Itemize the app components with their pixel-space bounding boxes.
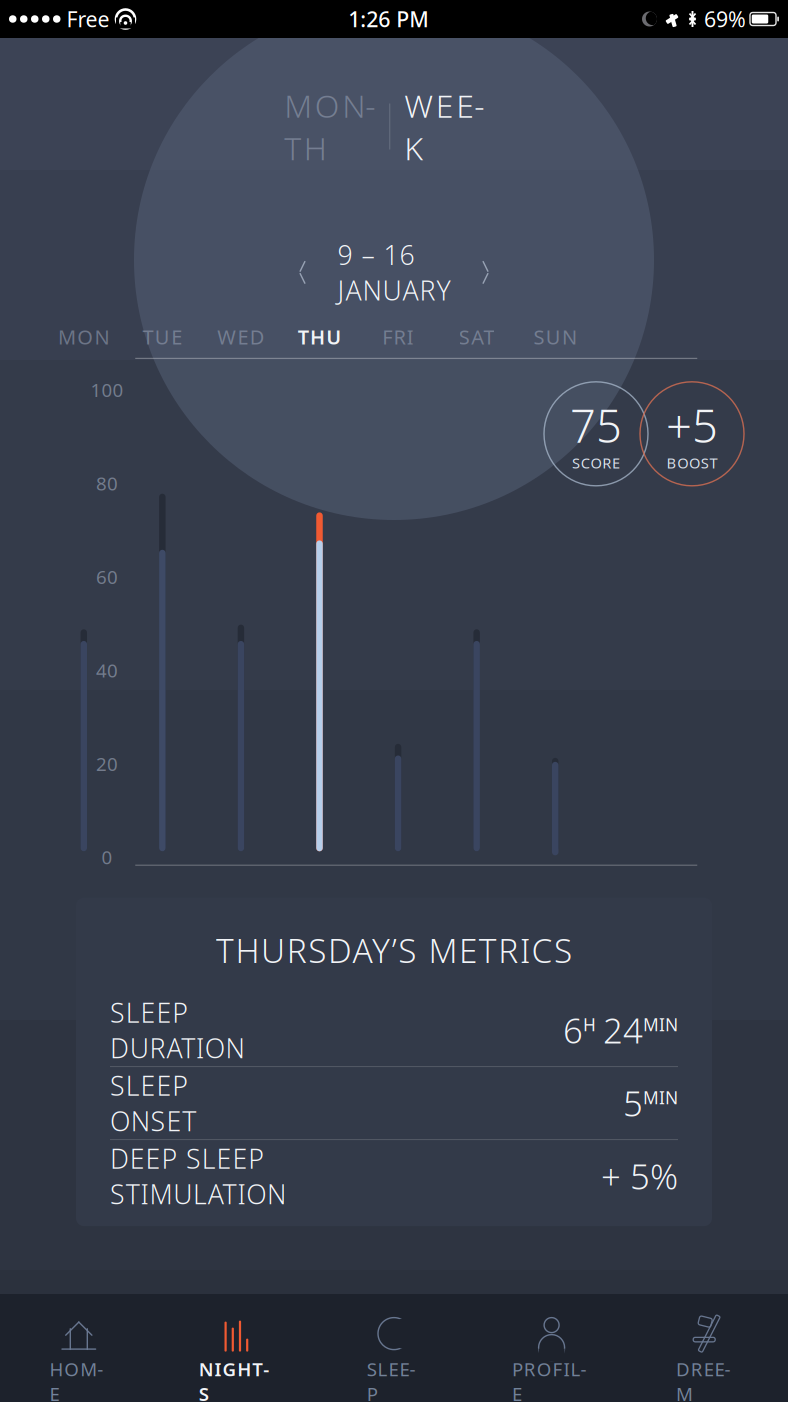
staticText: HOME (49, 1357, 108, 1381)
button[interactable]: TUE (123, 320, 202, 354)
staticText: + 5% (601, 1153, 678, 1199)
button[interactable]: SLEEP DURATION (76, 994, 712, 1066)
button[interactable]: FRI (359, 320, 437, 354)
button[interactable]: HOME (0, 1294, 158, 1402)
staticText: THURSDAY’S METRICS (216, 928, 572, 972)
staticText: Free (66, 5, 109, 33)
button[interactable]: THU (280, 320, 359, 354)
staticText: TUE (143, 323, 182, 350)
staticText: SAT (459, 323, 494, 350)
button[interactable]: Previous week (285, 252, 319, 292)
staticText: H (583, 1013, 596, 1036)
staticText: FRI (382, 323, 414, 350)
button[interactable]: SLEEP (315, 1294, 473, 1402)
staticText: WED (217, 323, 265, 350)
button[interactable]: PROFILE (473, 1294, 630, 1402)
button[interactable]: NIGHTS (158, 1294, 315, 1402)
button[interactable]: DREEM (630, 1294, 788, 1402)
staticText: 60 (96, 564, 118, 589)
staticText: SCORE (572, 453, 620, 473)
staticText: 40 (96, 658, 118, 683)
staticText: DEEP SLEEP STIMULATION (110, 1141, 286, 1211)
staticText: 80 (96, 471, 118, 496)
button[interactable]: 75 (544, 382, 648, 486)
button[interactable]: Next week (468, 252, 502, 292)
staticText: 0 (101, 845, 112, 869)
button[interactable]: MONTH (270, 74, 389, 179)
staticText: 20 (96, 751, 118, 776)
staticText: +5 (666, 395, 718, 455)
staticText: SLEEP ONSET (110, 1068, 196, 1138)
staticText: 24 (603, 1007, 643, 1053)
button[interactable]: SLEEP ONSET (76, 1067, 712, 1139)
staticText: 6 (563, 1007, 583, 1053)
staticText: 75 (570, 395, 622, 455)
staticText: 69% (704, 5, 746, 33)
staticText: 100 (90, 377, 123, 402)
staticText: MONTH (284, 84, 375, 169)
staticText: 5 (623, 1080, 643, 1126)
button[interactable]: WED (202, 320, 280, 354)
staticText: DREEM (676, 1357, 742, 1381)
staticText: BOOST (666, 453, 718, 473)
staticText: 1:26 PM (348, 5, 429, 33)
staticText: MIN (643, 1086, 678, 1109)
button[interactable]: SAT (437, 320, 516, 354)
staticText: 9 – 16 JANUARY (337, 237, 450, 308)
staticText: SUN (533, 323, 577, 350)
staticText: WEEK (404, 84, 484, 169)
staticText: SLEEP (367, 1357, 421, 1381)
button[interactable]: DEEP SLEEP STIMULATION (76, 1140, 712, 1212)
staticText: MON (58, 323, 110, 350)
staticText: THU (298, 323, 341, 350)
staticText: PROFILE (512, 1357, 591, 1381)
staticText: SLEEP DURATION (110, 995, 245, 1065)
button[interactable]: WEEK (390, 74, 498, 179)
staticText: NIGHTS (199, 1357, 274, 1381)
staticText: MIN (643, 1013, 678, 1036)
button[interactable]: +5 (640, 382, 744, 486)
button[interactable]: SUN (516, 320, 594, 354)
button[interactable]: MON (44, 320, 123, 354)
